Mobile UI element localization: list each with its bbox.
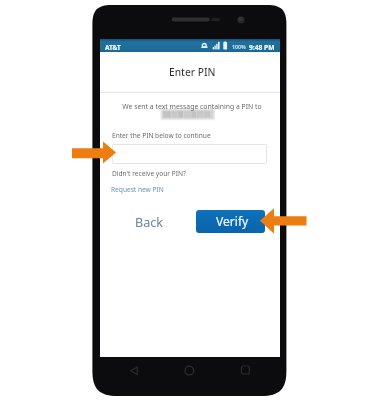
staticText: 100% — [232, 43, 246, 50]
staticText: 9:48 PM — [249, 43, 275, 52]
staticText: Verify — [216, 213, 249, 229]
button[interactable]: Home — [160, 357, 220, 385]
button[interactable]: PIN entry field — [112, 144, 267, 164]
other: Callout arrow pointing at the Verify but… — [256, 206, 310, 236]
staticText: Back — [135, 214, 164, 231]
staticText: Enter PIN — [169, 65, 216, 79]
staticText: Enter the PIN below to continue — [112, 131, 211, 140]
staticText: Request new PIN — [111, 185, 164, 194]
button[interactable]: Back — [100, 357, 160, 385]
staticText: AT&T — [105, 43, 121, 52]
staticText: We sent a text message containing a PIN … — [122, 102, 262, 111]
button[interactable]: Recent apps — [220, 357, 280, 385]
other: Callout arrow pointing at the PIN field — [70, 138, 120, 168]
button[interactable]: Back — [130, 212, 168, 233]
staticText: Didn't receive your PIN? — [112, 169, 186, 178]
button[interactable]: Request new PIN — [110, 184, 165, 195]
button[interactable]: Verify — [196, 210, 265, 233]
